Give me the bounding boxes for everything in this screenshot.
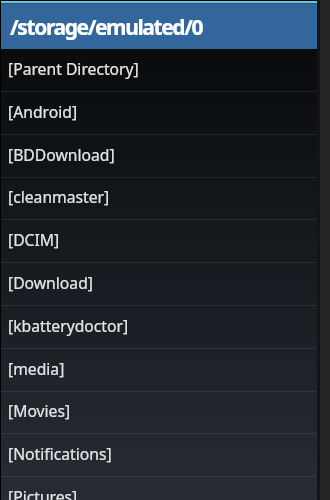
button[interactable]: [DCIM] <box>1 220 330 263</box>
button[interactable]: [kbatterydoctor] <box>1 306 330 349</box>
staticText: /storage/emulated/0 <box>10 13 203 42</box>
button[interactable]: [media] <box>1 349 330 392</box>
staticText: [kbatterydoctor] <box>8 315 129 336</box>
staticText: [cleanmaster] <box>8 186 110 207</box>
button[interactable]: [Parent Directory] <box>1 49 330 92</box>
button[interactable]: [Download] <box>1 263 330 306</box>
staticText: [Android] <box>8 101 78 122</box>
button[interactable]: [cleanmaster] <box>1 177 330 220</box>
staticText: [media] <box>8 358 65 379</box>
staticText: [Pictures] <box>8 486 78 500</box>
staticText: [Movies] <box>8 400 71 421</box>
button[interactable]: /storage/emulated/0 <box>1 4 330 49</box>
staticText: [BDDownload] <box>8 144 115 165</box>
button[interactable]: [Notifications] <box>1 434 330 477</box>
button[interactable]: [Pictures] <box>1 477 330 500</box>
staticText: [Download] <box>8 272 93 293</box>
staticText: [Notifications] <box>8 443 112 464</box>
button[interactable]: [Android] <box>1 92 330 135</box>
button[interactable]: [Movies] <box>1 391 330 434</box>
staticText: [DCIM] <box>8 229 60 250</box>
button[interactable]: [BDDownload] <box>1 135 330 178</box>
staticText: [Parent Directory] <box>8 58 139 79</box>
